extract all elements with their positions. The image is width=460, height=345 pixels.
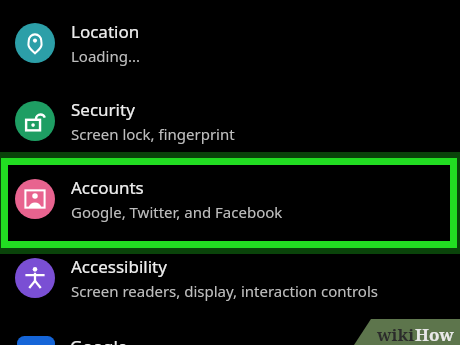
staticText: Screen lock, fingerprint [71,124,235,144]
staticText: How [415,323,454,345]
button[interactable]: Accessibility [0,243,460,313]
staticText: Screen readers, display, interaction con… [71,281,378,301]
staticText: Google [70,335,128,345]
button[interactable]: Google [0,330,460,345]
staticText: Location [71,20,140,43]
staticText: Loading... [71,46,141,66]
button[interactable]: Accounts [0,164,460,234]
staticText: Security [71,98,135,121]
staticText: wiki [377,323,415,345]
staticText: Accessibility [71,255,167,278]
staticText: Accounts [71,176,144,199]
button[interactable]: Location [0,8,460,78]
button[interactable]: Security [0,86,460,156]
staticText: Google, Twitter, and Facebook [71,202,283,222]
other: Google [17,336,55,345]
